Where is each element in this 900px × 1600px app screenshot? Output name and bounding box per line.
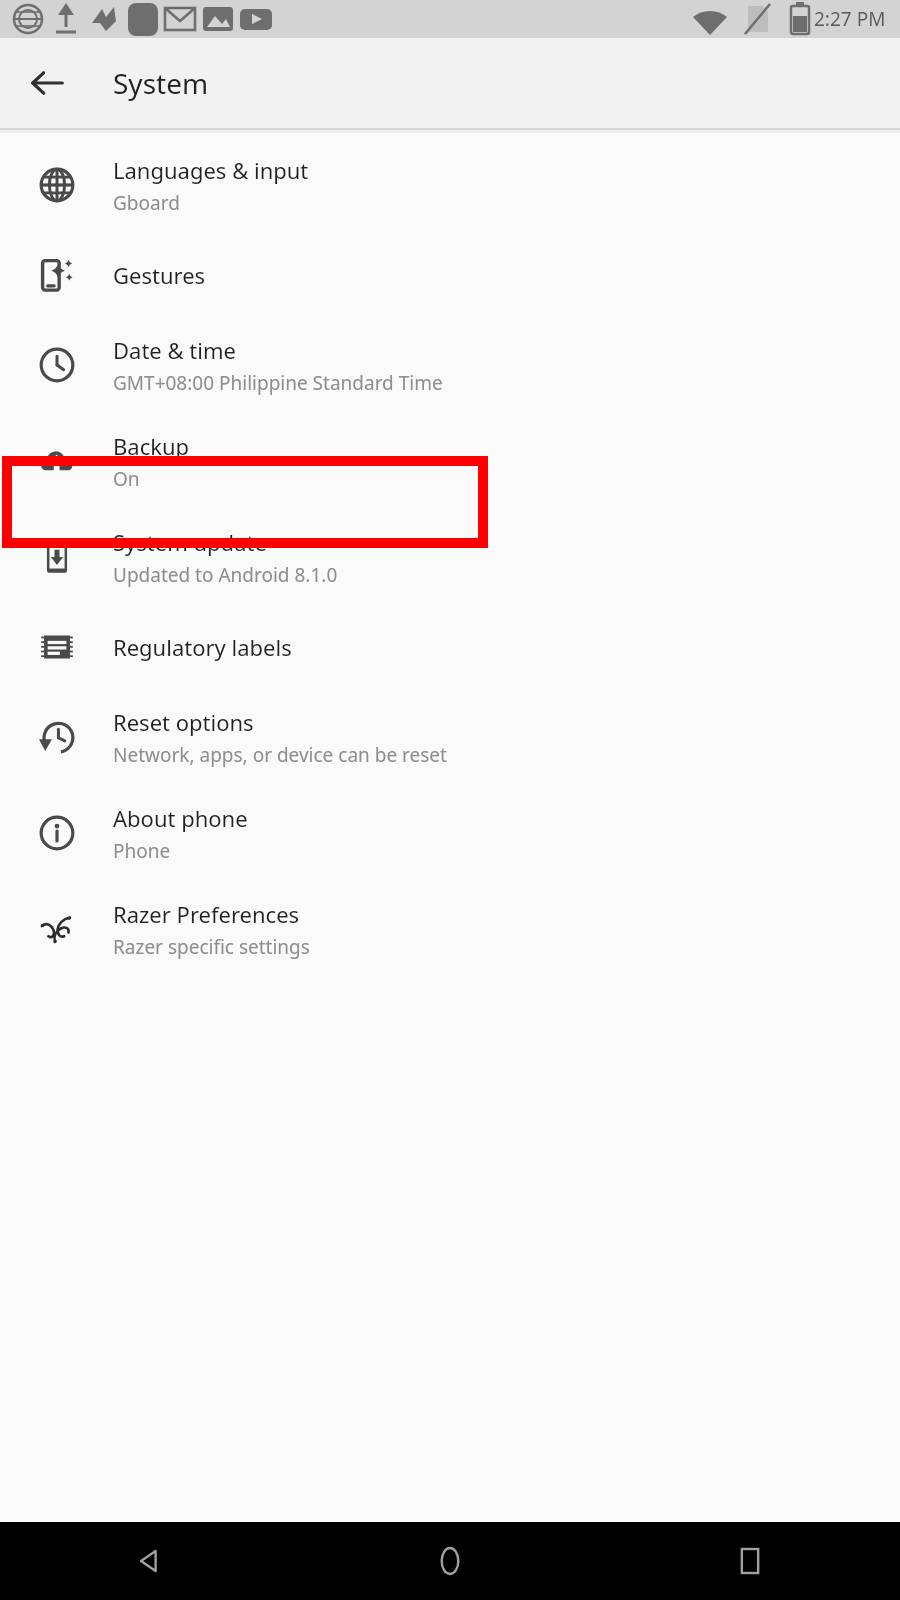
button[interactable]: System update: [0, 509, 900, 605]
staticText: Gboard: [113, 190, 180, 216]
button[interactable]: Back: [90, 1522, 210, 1600]
staticText: About phone: [113, 803, 248, 833]
staticText: System update: [113, 527, 267, 557]
staticText: On: [113, 466, 140, 492]
button[interactable]: Languages & input: [0, 137, 900, 233]
button[interactable]: Razer Preferences: [0, 881, 900, 977]
button[interactable]: Date & time: [0, 317, 900, 413]
staticText: GMT+08:00 Philippine Standard Time: [113, 370, 443, 396]
button[interactable]: About phone: [0, 785, 900, 881]
staticText: Gestures: [113, 260, 206, 290]
staticText: Reset options: [113, 707, 254, 737]
staticText: Backup: [113, 431, 190, 461]
staticText: Phone: [113, 838, 171, 864]
button[interactable]: Reset options: [0, 689, 900, 785]
button[interactable]: Home: [390, 1522, 510, 1600]
button[interactable]: Recent apps: [690, 1522, 810, 1600]
button[interactable]: Gestures: [0, 233, 900, 317]
staticText: Razer specific settings: [113, 934, 310, 960]
staticText: Updated to Android 8.1.0: [113, 562, 338, 588]
staticText: Languages & input: [113, 155, 309, 185]
staticText: Razer Preferences: [113, 899, 300, 929]
button[interactable]: Regulatory labels: [0, 605, 900, 689]
staticText: Date & time: [113, 335, 236, 365]
button[interactable]: Back: [18, 54, 76, 112]
staticText: Network, apps, or device can be reset: [113, 742, 447, 768]
staticText: 2:27 PM: [814, 6, 886, 32]
staticText: System: [113, 64, 209, 102]
staticText: Regulatory labels: [113, 632, 292, 662]
button[interactable]: Backup: [0, 413, 900, 509]
